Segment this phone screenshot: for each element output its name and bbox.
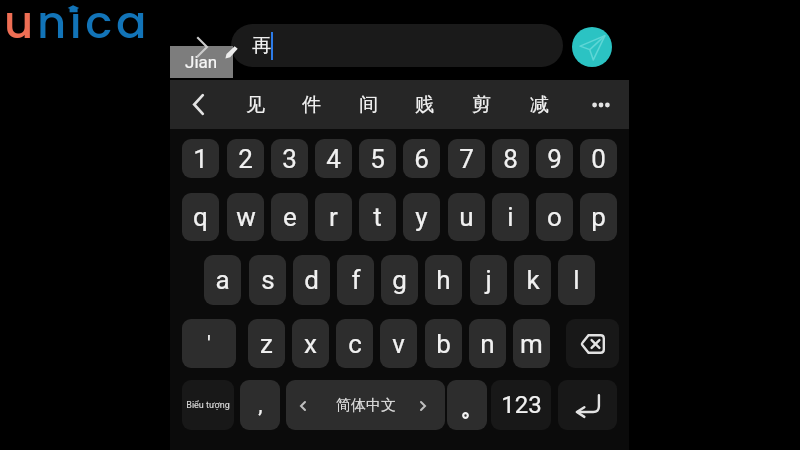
- staticText: i: [507, 202, 514, 232]
- staticText: h: [436, 265, 451, 295]
- staticText: g: [392, 265, 407, 295]
- button[interactable]: s: [249, 255, 286, 305]
- staticText: 6: [414, 144, 429, 174]
- staticText: n: [480, 329, 495, 359]
- button[interactable]: v: [380, 319, 417, 368]
- staticText: 剪: [472, 93, 491, 117]
- staticText: 件: [302, 93, 321, 117]
- button[interactable]: Back: [178, 84, 218, 124]
- button[interactable]: 3: [271, 139, 308, 178]
- button[interactable]: z: [248, 319, 285, 368]
- staticText: 贱: [415, 93, 434, 117]
- staticText: e: [283, 202, 297, 232]
- staticText: 间: [359, 93, 378, 117]
- button[interactable]: a: [204, 255, 241, 305]
- staticText: 见: [246, 93, 265, 117]
- staticText: 1: [193, 144, 208, 174]
- button[interactable]: h: [425, 255, 462, 305]
- staticText: nica: [37, 0, 150, 54]
- staticText: r: [329, 202, 338, 232]
- button[interactable]: 简体中文: [286, 380, 445, 430]
- button[interactable]: 8: [492, 139, 529, 178]
- staticText: d: [304, 265, 319, 295]
- staticText: 减: [530, 93, 549, 117]
- button[interactable]: j: [470, 255, 507, 305]
- button[interactable]: o: [536, 193, 573, 241]
- button[interactable]: 件: [287, 83, 335, 127]
- button[interactable]: y: [403, 193, 440, 241]
- staticText: t: [373, 202, 382, 232]
- staticText: 5: [370, 144, 385, 174]
- button[interactable]: g: [381, 255, 418, 305]
- button[interactable]: Send: [572, 27, 612, 67]
- staticText: k: [526, 265, 540, 295]
- staticText: x: [304, 329, 317, 359]
- button[interactable]: m: [513, 319, 550, 368]
- button[interactable]: 0: [580, 139, 617, 178]
- staticText: ': [207, 331, 211, 357]
- button[interactable]: 1: [182, 139, 219, 178]
- button[interactable]: d: [293, 255, 330, 305]
- button[interactable]: n: [469, 319, 506, 368]
- staticText: b: [436, 329, 451, 359]
- staticText: 8: [503, 144, 518, 174]
- button[interactable]: u: [448, 193, 485, 241]
- button[interactable]: p: [580, 193, 617, 241]
- button[interactable]: f: [337, 255, 374, 305]
- staticText: 简体中文: [336, 396, 396, 415]
- button[interactable]: k: [514, 255, 551, 305]
- button[interactable]: 4: [315, 139, 352, 178]
- staticText: ,: [258, 392, 263, 418]
- staticText: w: [236, 202, 256, 232]
- button[interactable]: r: [315, 193, 352, 241]
- staticText: 4: [326, 144, 341, 174]
- button[interactable]: q: [182, 193, 219, 241]
- staticText: y: [415, 202, 428, 232]
- staticText: 3: [282, 144, 297, 174]
- button[interactable]: l: [558, 255, 595, 305]
- button[interactable]: 剪: [457, 83, 505, 127]
- staticText: z: [260, 329, 273, 359]
- button[interactable]: 再: [231, 24, 563, 67]
- button[interactable]: 2: [227, 139, 264, 178]
- staticText: u: [459, 202, 474, 232]
- staticText: q: [193, 202, 208, 232]
- button[interactable]: e: [271, 193, 308, 241]
- button[interactable]: 贱: [400, 83, 448, 127]
- staticText: f: [351, 265, 361, 295]
- button[interactable]: w: [227, 193, 264, 241]
- button[interactable]: ,: [240, 380, 280, 430]
- staticText: 0: [591, 144, 606, 174]
- staticText: j: [485, 265, 492, 295]
- staticText: o: [547, 202, 562, 232]
- button[interactable]: 9: [536, 139, 573, 178]
- staticText: 再: [252, 34, 271, 58]
- button[interactable]: Period: [447, 380, 487, 430]
- button[interactable]: c: [336, 319, 373, 368]
- button[interactable]: Enter: [558, 380, 617, 430]
- button[interactable]: b: [425, 319, 462, 368]
- staticText: v: [392, 329, 405, 359]
- button[interactable]: Jian: [170, 46, 233, 78]
- staticText: 2: [238, 144, 253, 174]
- button[interactable]: 123: [491, 380, 551, 430]
- staticText: c: [348, 329, 362, 359]
- button[interactable]: i: [492, 193, 529, 241]
- button[interactable]: Backspace: [566, 319, 619, 368]
- button[interactable]: x: [292, 319, 329, 368]
- staticText: u: [4, 0, 37, 54]
- staticText: m: [520, 329, 543, 359]
- button[interactable]: Biểu tượng: [182, 380, 234, 430]
- button[interactable]: 见: [231, 83, 279, 127]
- button[interactable]: 5: [359, 139, 396, 178]
- button[interactable]: 间: [344, 83, 392, 127]
- button[interactable]: ': [182, 319, 236, 368]
- button[interactable]: 7: [448, 139, 485, 178]
- staticText: 9: [547, 144, 562, 174]
- button[interactable]: 6: [403, 139, 440, 178]
- button[interactable]: t: [359, 193, 396, 241]
- button[interactable]: 减: [515, 83, 563, 127]
- button[interactable]: More options: [580, 85, 621, 125]
- staticText: s: [261, 265, 275, 295]
- staticText: p: [591, 202, 606, 232]
